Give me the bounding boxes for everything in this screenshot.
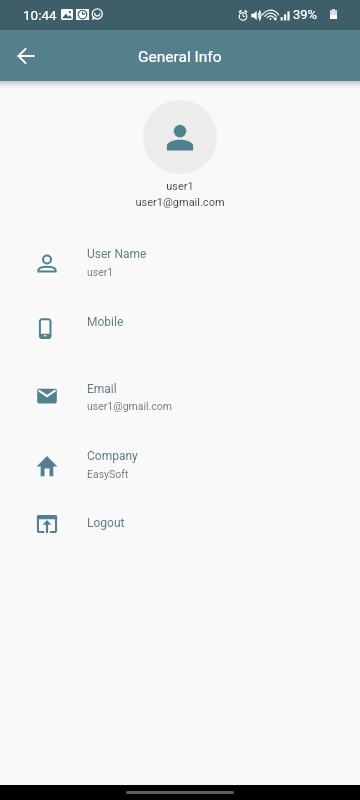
staticText: Company — [87, 449, 138, 463]
staticText: user1@gmail.com — [87, 400, 173, 412]
staticText: Logout — [87, 516, 125, 530]
staticText: EasySoft — [87, 468, 129, 480]
staticText: Email — [87, 382, 117, 396]
staticText: 39% — [293, 7, 318, 22]
button[interactable]: Company — [0, 449, 360, 516]
staticText: user1 — [87, 266, 114, 278]
button[interactable]: Logout — [0, 516, 360, 583]
staticText: user1@gmail.com — [0, 196, 360, 209]
button[interactable]: Back — [6, 36, 46, 76]
staticText: User Name — [87, 247, 147, 261]
button[interactable]: Email — [0, 382, 360, 449]
staticText: 10:44 — [23, 7, 57, 23]
staticText: user1 — [0, 180, 360, 193]
staticText: General Info — [138, 48, 222, 66]
button[interactable]: Mobile — [0, 315, 360, 382]
button[interactable]: User Name — [0, 247, 360, 314]
staticText: Mobile — [87, 315, 124, 329]
